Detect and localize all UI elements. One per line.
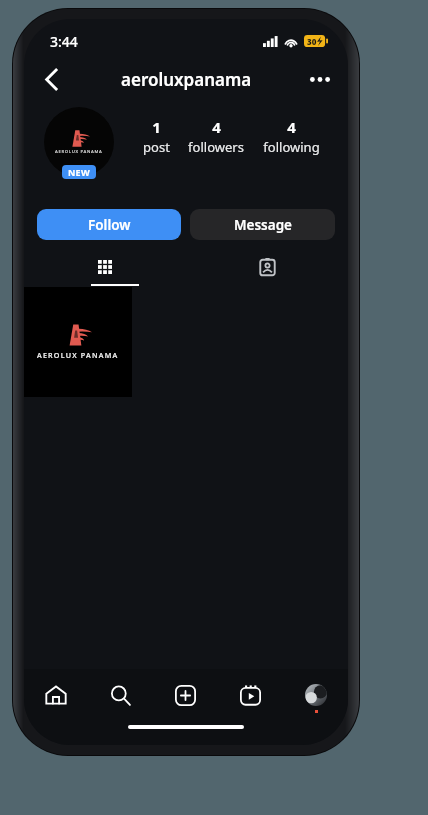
staticText: AEROLUX PANAMA [37, 350, 119, 360]
button[interactable]: Search [88, 669, 153, 721]
staticText: 3:44 [50, 32, 78, 51]
button[interactable]: More options [300, 59, 340, 99]
staticText: 1 [152, 117, 161, 137]
button[interactable]: Profile [283, 669, 348, 721]
staticText: aeroluxpanama [121, 68, 252, 91]
staticText: 4 [287, 117, 296, 137]
button[interactable]: Tagged posts [186, 250, 348, 284]
staticText: followers [188, 138, 244, 156]
staticText: 4 [212, 117, 221, 137]
button[interactable]: Reels [218, 669, 283, 721]
button[interactable]: 1 [139, 117, 174, 156]
staticText: NEW [68, 166, 90, 178]
button[interactable]: Create [153, 669, 218, 721]
staticText: following [263, 138, 320, 156]
button[interactable]: 4 [259, 117, 324, 156]
button[interactable]: 4 [184, 117, 248, 156]
staticText: Follow [88, 216, 131, 234]
button[interactable]: Posts grid [24, 250, 186, 284]
staticText: post [143, 138, 170, 156]
button[interactable]: Home [24, 669, 88, 721]
button[interactable]: Back [30, 59, 72, 99]
button[interactable]: AEROLUX PANAMA [38, 107, 120, 189]
staticText: Message [234, 216, 292, 234]
staticText: 30 [307, 36, 317, 47]
button[interactable]: Follow [37, 209, 181, 240]
button[interactable]: AEROLUX PANAMA [24, 287, 132, 397]
button[interactable]: Message [190, 209, 335, 240]
staticText: AEROLUX PANAMA [55, 149, 103, 155]
